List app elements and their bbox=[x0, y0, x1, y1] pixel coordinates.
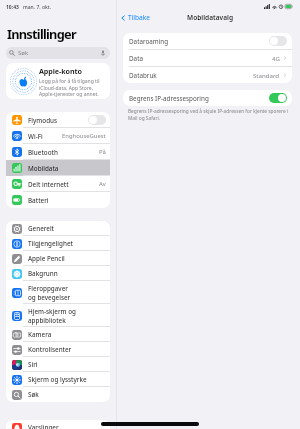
staticText: 10:43 bbox=[6, 4, 19, 11]
button[interactable]: Apple Pencil bbox=[6, 251, 110, 266]
staticText: Databruk bbox=[129, 71, 157, 80]
button[interactable]: Off bbox=[88, 115, 106, 125]
staticText: Standard bbox=[253, 71, 280, 79]
button[interactable]: Mobildata bbox=[6, 160, 110, 176]
staticText: Bluetooth bbox=[28, 148, 58, 157]
staticText: Søk bbox=[18, 49, 29, 57]
button[interactable]: Off bbox=[269, 36, 287, 46]
staticText: og bevegelser bbox=[28, 293, 71, 302]
button[interactable]: Delt internett bbox=[6, 176, 110, 192]
button[interactable]: Kontrollsenter bbox=[6, 342, 110, 357]
staticText: Wi-Fi bbox=[28, 132, 43, 141]
button[interactable]: Tilbake bbox=[116, 13, 155, 22]
button[interactable]: Data bbox=[123, 50, 292, 66]
button[interactable]: Varslinger bbox=[6, 420, 110, 429]
staticText: Innstillinger bbox=[7, 25, 76, 42]
button[interactable]: Hjem-skjerm og bbox=[6, 304, 110, 327]
button[interactable]: Batteri bbox=[6, 192, 110, 208]
staticText: Begrens IP-adressesporing bbox=[129, 94, 209, 103]
staticText: Siri bbox=[28, 360, 38, 369]
staticText: Mobildata bbox=[28, 164, 59, 173]
staticText: Tilgjengelighet bbox=[28, 239, 73, 248]
button[interactable]: Bakgrunn bbox=[6, 266, 110, 281]
staticText: Skjerm og lysstyrke bbox=[28, 375, 87, 384]
staticText: appbibliotek bbox=[28, 316, 66, 325]
staticText: Tilbake bbox=[128, 13, 151, 22]
staticText: EnghouseGuest bbox=[62, 132, 106, 140]
staticText: Flymodus bbox=[28, 116, 58, 125]
staticText: Mobildatavalg bbox=[187, 13, 234, 22]
button[interactable]: Skjerm og lysstyrke bbox=[6, 372, 110, 387]
button[interactable]: Tilgjengelighet bbox=[6, 236, 110, 251]
button[interactable]: Bluetooth bbox=[6, 144, 110, 160]
button[interactable]: Siri bbox=[6, 357, 110, 372]
staticText: På bbox=[99, 148, 106, 156]
staticText: Søk bbox=[28, 390, 39, 399]
button[interactable]: Fleroppgaver bbox=[6, 281, 110, 304]
staticText: man. 7. okt. bbox=[23, 4, 52, 11]
button[interactable]: Søk bbox=[6, 47, 110, 59]
staticText: Batteri bbox=[28, 196, 49, 205]
staticText: Apple Pencil bbox=[28, 254, 65, 263]
staticText: Delt internett bbox=[28, 180, 69, 189]
staticText: Kontrollsenter bbox=[28, 345, 72, 354]
staticText: Logg på for å få tilgang til iCloud-data… bbox=[39, 78, 107, 97]
staticText: Varslinger bbox=[28, 423, 59, 429]
staticText: Apple-konto bbox=[39, 66, 82, 76]
staticText: Dataroaming bbox=[129, 37, 169, 46]
button[interactable]: Wi-Fi bbox=[6, 128, 110, 144]
staticText: Fleroppgaver bbox=[28, 284, 68, 293]
button[interactable]: Apple-konto bbox=[6, 63, 110, 99]
staticText: Bakgrunn bbox=[28, 269, 58, 278]
staticText: Hjem-skjerm og bbox=[28, 307, 76, 316]
staticText: Av bbox=[99, 180, 106, 188]
staticText: Data bbox=[129, 54, 143, 63]
staticText: Kamera bbox=[28, 330, 52, 339]
button[interactable]: Flymodus bbox=[6, 112, 110, 128]
button[interactable]: On bbox=[269, 93, 287, 103]
button[interactable]: Databruk bbox=[123, 67, 292, 83]
button[interactable]: Begrens IP-adressesporing bbox=[123, 90, 292, 106]
staticText: 4G bbox=[272, 54, 280, 62]
button[interactable]: Generelt bbox=[6, 221, 110, 236]
button[interactable]: Dataroaming bbox=[123, 33, 292, 49]
button[interactable]: Søk bbox=[6, 387, 110, 402]
staticText: Begrens IP-adressesporing ved å skjule I… bbox=[128, 108, 292, 121]
staticText: Generelt bbox=[28, 224, 55, 233]
button[interactable]: Kamera bbox=[6, 327, 110, 342]
